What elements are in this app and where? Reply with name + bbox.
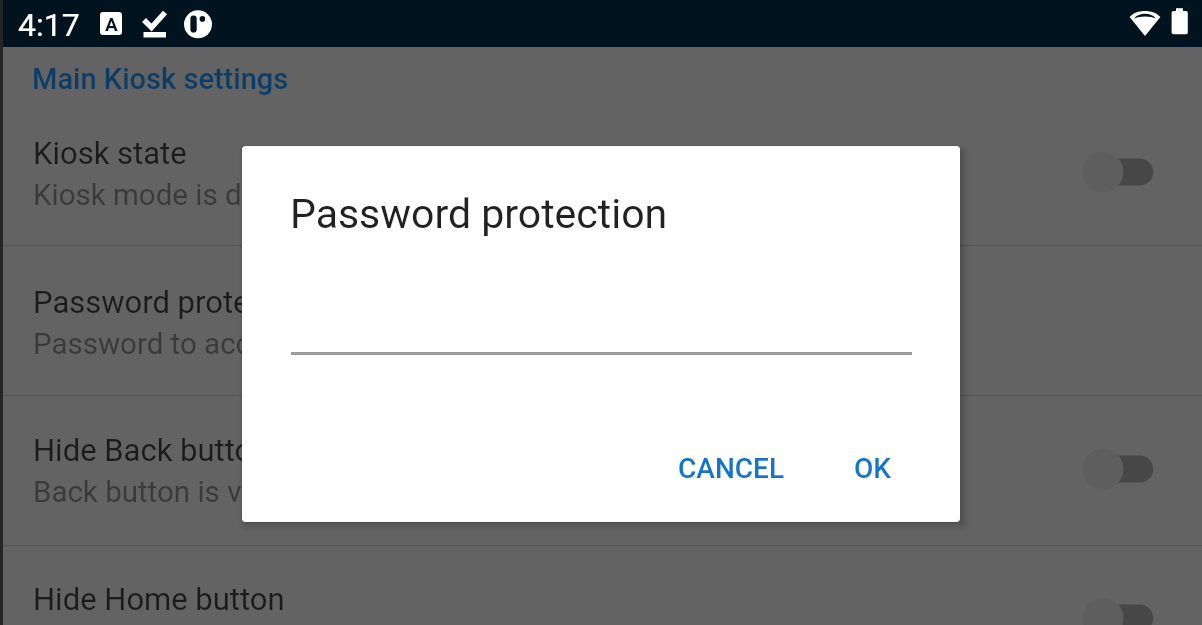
staticText: Password protection [33, 284, 319, 320]
staticText: Password protection [290, 190, 668, 238]
button[interactable]: Hide Back button [0, 393, 1202, 541]
staticText: Hide Home button [33, 581, 285, 617]
staticText: Password to access settings [33, 327, 410, 362]
staticText: CANCEL [678, 452, 785, 485]
staticText: A [105, 13, 118, 35]
other: App [183, 10, 213, 40]
button[interactable]: Toggle [1077, 447, 1159, 491]
button[interactable]: Hide Home button [0, 542, 1202, 625]
button[interactable]: Password protection [0, 245, 1202, 393]
staticText: Kiosk state [33, 135, 187, 171]
staticText: Kiosk mode is disabled [33, 178, 337, 213]
other: Battery [1170, 7, 1190, 37]
button[interactable]: Toggle [1077, 150, 1159, 194]
button[interactable]: CANCEL [656, 438, 807, 499]
staticText: Back button is visible [33, 475, 311, 510]
staticText: OK [854, 452, 891, 485]
button[interactable]: OK [832, 438, 913, 499]
staticText: 4:17 [18, 6, 80, 44]
other: Wi-Fi [1129, 9, 1161, 36]
other: Accessibility [100, 12, 122, 35]
button[interactable]: Toggle [1077, 596, 1159, 625]
staticText: Hide Back button [33, 432, 270, 468]
other: Download complete [142, 9, 168, 39]
staticText: Main Kiosk settings [32, 62, 289, 96]
button[interactable]: Kiosk state [0, 96, 1202, 244]
